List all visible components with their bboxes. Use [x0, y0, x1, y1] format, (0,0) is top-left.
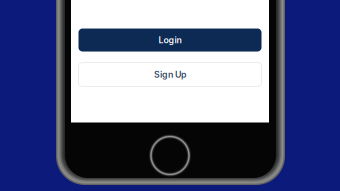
- button[interactable]: Home: [147, 132, 193, 178]
- staticText: Login: [158, 35, 181, 45]
- button[interactable]: Login: [78, 28, 261, 51]
- staticText: Sign Up: [154, 69, 186, 80]
- button[interactable]: Sign Up: [78, 62, 261, 86]
